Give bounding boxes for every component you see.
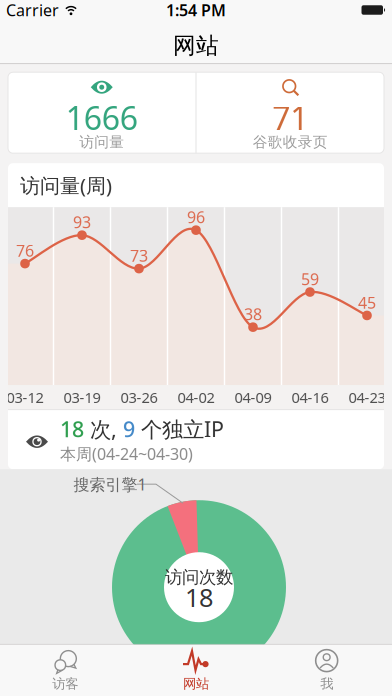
staticText: 38 xyxy=(244,303,262,325)
button[interactable]: 1666 xyxy=(8,72,195,153)
button[interactable]: 71 xyxy=(196,72,384,153)
staticText: 谷歌收录页 xyxy=(253,133,328,151)
staticText: 73 xyxy=(130,245,148,266)
staticText: 04-09 xyxy=(234,387,271,407)
staticText: 本周(04-24~04-30) xyxy=(60,443,193,464)
staticText: 网站 xyxy=(173,32,219,60)
button[interactable]: 18 xyxy=(8,410,384,469)
staticText: 59 xyxy=(301,268,319,290)
staticText: 71 xyxy=(272,96,308,139)
staticText: 9 xyxy=(123,415,141,443)
staticText: 次, xyxy=(90,415,123,443)
staticText: 04-16 xyxy=(291,387,328,407)
staticText: 03-26 xyxy=(120,387,157,407)
staticText: Carrier xyxy=(6,0,59,21)
button[interactable]: 访客 xyxy=(0,648,131,692)
staticText: 18 xyxy=(60,415,90,443)
staticText: 网站 xyxy=(183,676,209,692)
staticText: 访问量 xyxy=(79,133,124,151)
staticText: 93 xyxy=(73,211,91,233)
staticText: 个独立IP xyxy=(141,415,224,443)
staticText: 18 xyxy=(185,580,213,614)
staticText: 45 xyxy=(358,292,376,313)
staticText: 访问量(周) xyxy=(20,172,112,198)
staticText: 76 xyxy=(16,240,34,261)
staticText: 03-12 xyxy=(6,387,43,407)
staticText: 96 xyxy=(187,206,205,228)
button[interactable]: 我 xyxy=(261,648,392,692)
staticText: 我 xyxy=(320,676,333,692)
staticText: 03-19 xyxy=(63,387,100,407)
staticText: 访客 xyxy=(52,676,78,692)
staticText: 04-23 xyxy=(348,387,385,407)
staticText: 搜索引擎1 xyxy=(73,474,146,495)
staticText: 访问次数 xyxy=(165,567,233,588)
staticText: 1666 xyxy=(66,96,138,139)
staticText: 1:54 PM xyxy=(166,0,226,21)
button[interactable]: 网站 xyxy=(131,648,261,692)
staticText: 04-02 xyxy=(177,387,214,407)
